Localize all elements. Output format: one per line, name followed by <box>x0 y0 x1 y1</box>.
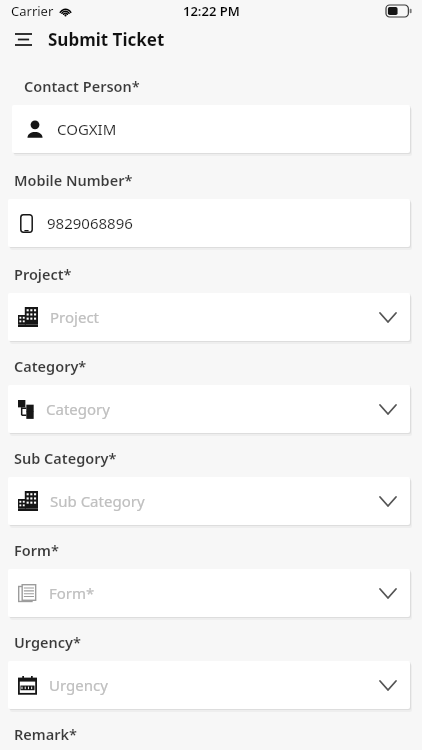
staticText: 12:22 PM <box>183 2 240 20</box>
staticText: Form* <box>49 583 95 603</box>
staticText: Category* <box>14 356 87 376</box>
staticText: Project* <box>14 264 72 284</box>
staticText: COGXIM <box>57 119 117 139</box>
staticText: Submit Ticket <box>48 28 165 51</box>
staticText: Project <box>50 307 99 327</box>
staticText: Contact Person* <box>24 76 140 96</box>
other: Expand Form* options <box>380 589 396 598</box>
button[interactable]: COGXIM <box>12 105 410 153</box>
staticText: 9829068896 <box>47 213 133 233</box>
staticText: Urgency* <box>14 632 81 652</box>
staticText: Category <box>46 399 110 419</box>
staticText: Urgency <box>49 675 108 695</box>
staticText: Carrier <box>11 2 54 20</box>
staticText: Form* <box>14 540 59 560</box>
other: Expand Category* options <box>380 405 396 414</box>
staticText: Mobile Number* <box>14 170 133 190</box>
button[interactable]: Form* <box>8 569 410 617</box>
button[interactable]: Project <box>8 293 410 341</box>
other: Expand Project* options <box>380 313 396 322</box>
button[interactable]: Category <box>8 385 410 433</box>
other: Expand Urgency* options <box>380 681 396 690</box>
button[interactable]: Open navigation menu <box>7 23 39 55</box>
button[interactable]: Urgency <box>8 661 410 709</box>
staticText: Sub Category* <box>14 448 117 468</box>
other: Expand Sub Category* options <box>380 497 396 506</box>
staticText: Sub Category <box>50 491 145 511</box>
button[interactable]: 9829068896 <box>8 199 410 247</box>
staticText: Remark* <box>14 724 77 744</box>
button[interactable]: Sub Category <box>8 477 410 525</box>
